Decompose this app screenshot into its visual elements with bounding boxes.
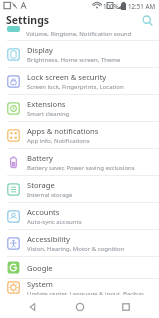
staticText: Settings <box>6 13 50 27</box>
button[interactable]: Google <box>0 257 159 278</box>
staticText: App info, Notifications <box>27 137 90 145</box>
staticText: Internal storage <box>27 191 73 199</box>
button[interactable]: Battery <box>0 149 159 175</box>
staticText: Vision, Hearing, Motor & cognition <box>27 245 125 253</box>
staticText: Google <box>27 263 53 273</box>
staticText: Storage <box>27 180 55 190</box>
staticText: Accounts <box>27 207 60 217</box>
staticText: Screen lock, Fingerprints, Location <box>27 83 124 91</box>
button[interactable]: Lock screen & security <box>0 68 159 94</box>
staticText: Display <box>27 45 53 55</box>
staticText: Lock screen & security <box>27 72 107 82</box>
staticText: Brightness, Home screen, Theme <box>27 56 121 64</box>
button[interactable]: Accounts <box>0 203 159 229</box>
button[interactable]: Storage <box>0 176 159 202</box>
staticText: Extensions <box>27 99 66 109</box>
button[interactable]: Apps & notifications <box>0 122 159 148</box>
button[interactable]: Recents <box>113 295 139 318</box>
staticText: Update center, Language & input, Backup <box>27 290 144 295</box>
staticText: Smart cleaning <box>27 110 70 118</box>
staticText: Volume, Ringtone, Notification sound <box>26 30 132 38</box>
staticText: Apps & notifications <box>27 126 99 136</box>
staticText: Battery <box>27 153 53 163</box>
button[interactable]: Home <box>67 295 93 318</box>
staticText: 100% <box>103 2 119 10</box>
button[interactable]: Display <box>0 41 159 67</box>
button[interactable]: Search <box>139 12 155 28</box>
staticText: Auto-sync accounts <box>27 218 82 226</box>
staticText: 12:51 AM <box>128 2 155 10</box>
button[interactable]: Volume, Ringtone, Notification sound <box>0 29 159 40</box>
staticText: Battery saver, Power saving exclusions <box>27 164 135 172</box>
button[interactable]: Back <box>20 295 46 318</box>
staticText: Accessibility <box>27 234 70 244</box>
button[interactable]: System <box>0 279 159 295</box>
staticText: System <box>27 279 53 289</box>
button[interactable]: Accessibility <box>0 230 159 256</box>
button[interactable]: Extensions <box>0 95 159 121</box>
